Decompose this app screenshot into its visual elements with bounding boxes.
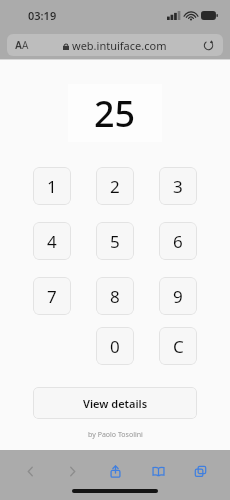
staticText: View details [83,396,148,411]
button[interactable]: 1 [33,167,71,205]
staticText: 0 [110,335,120,358]
staticText: 3 [173,175,183,198]
staticText: 25 [94,89,136,138]
button[interactable]: 8 [96,277,134,315]
staticText: C [173,335,184,358]
button[interactable]: 6 [159,222,197,260]
button[interactable]: 9 [159,277,197,315]
staticText: web.intuiface.com [72,38,167,53]
staticText: 9 [173,285,183,308]
button[interactable]: Forward [59,458,85,484]
button[interactable]: Share [102,458,128,484]
button[interactable]: 0 [96,327,134,365]
staticText: 𝐀A [15,38,29,52]
button[interactable]: Bookmarks [145,458,171,484]
button[interactable]: 𝐀A [7,34,223,56]
button[interactable]: 7 [33,277,71,315]
staticText: 4 [47,230,57,253]
staticText: 6 [173,230,183,253]
button[interactable]: 3 [159,167,197,205]
button[interactable]: 5 [96,222,134,260]
button[interactable]: View details [33,387,197,419]
staticText: 2 [110,175,120,198]
other: Reload [203,40,214,51]
staticText: 7 [47,285,57,308]
button[interactable]: Back [17,458,43,484]
button[interactable]: C [159,327,197,365]
staticText: 1 [47,175,57,198]
button[interactable]: 2 [96,167,134,205]
staticText: 8 [110,285,120,308]
staticText: by Paolo Tosolini [88,430,143,440]
staticText: 5 [110,230,120,253]
staticText: 03:19 [28,8,57,23]
button[interactable]: 4 [33,222,71,260]
button[interactable]: Tabs [187,458,213,484]
